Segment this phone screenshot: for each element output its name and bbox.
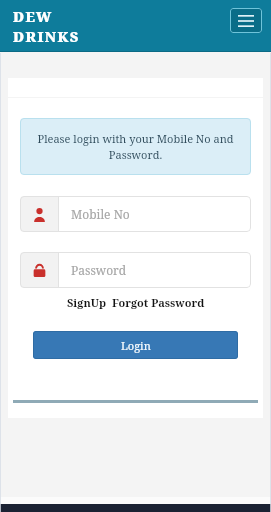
button[interactable]: SignUp [67,295,107,310]
staticText: Please login with your Mobile No and Pas… [30,131,241,162]
button[interactable]: Forgot Password [112,295,205,310]
staticText: Password [71,262,127,278]
staticText: DRINKS [13,27,80,46]
staticText: Mobile No [71,206,130,222]
button[interactable]: Password [20,252,251,288]
staticText: Forgot Password [112,295,205,310]
button[interactable]: Login [33,331,238,359]
button[interactable]: Menu [230,8,262,33]
staticText: Login [121,338,151,353]
staticText: SignUp [67,295,107,310]
button[interactable]: Mobile No [20,196,251,232]
staticText: DEW [13,7,53,26]
